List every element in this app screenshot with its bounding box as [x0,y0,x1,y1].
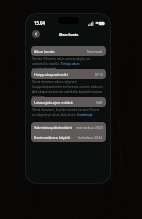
staticText: marraskuu 2023 [76,125,103,130]
staticText: Akun kunto [34,49,55,54]
button[interactable]: Back [32,30,40,38]
button[interactable]: Akun kunto [31,46,106,56]
staticText: Huippukapasiteetti [34,72,68,77]
staticText: Tämä ilmaisee, kuinka monta kertaa iPhon… [32,107,104,117]
button[interactable]: Latausjaksojen määrä [31,97,106,107]
staticText: 87 % [95,72,103,77]
staticText: 548 [96,100,103,105]
button[interactable]: Valmistuspäivämäärä [31,122,106,142]
staticText: Normaali [87,49,103,54]
button[interactable]: Huippukapasiteetti [31,69,106,79]
staticText: Tämän iPhonen akun suorituskyky on odote… [32,56,104,71]
staticText: Latausjaksojen määrä [34,100,73,105]
staticText: 15.04 [34,20,46,26]
staticText: helmikuu 2024 [78,135,103,140]
staticText: Ensimmäinen käyttö [34,135,71,140]
staticText: Tämä ilmaisee akun nykyisen huippukapasi… [32,79,104,99]
staticText: Akun kunto [59,32,79,36]
staticText: Valmistuspäivämäärä [34,125,72,130]
